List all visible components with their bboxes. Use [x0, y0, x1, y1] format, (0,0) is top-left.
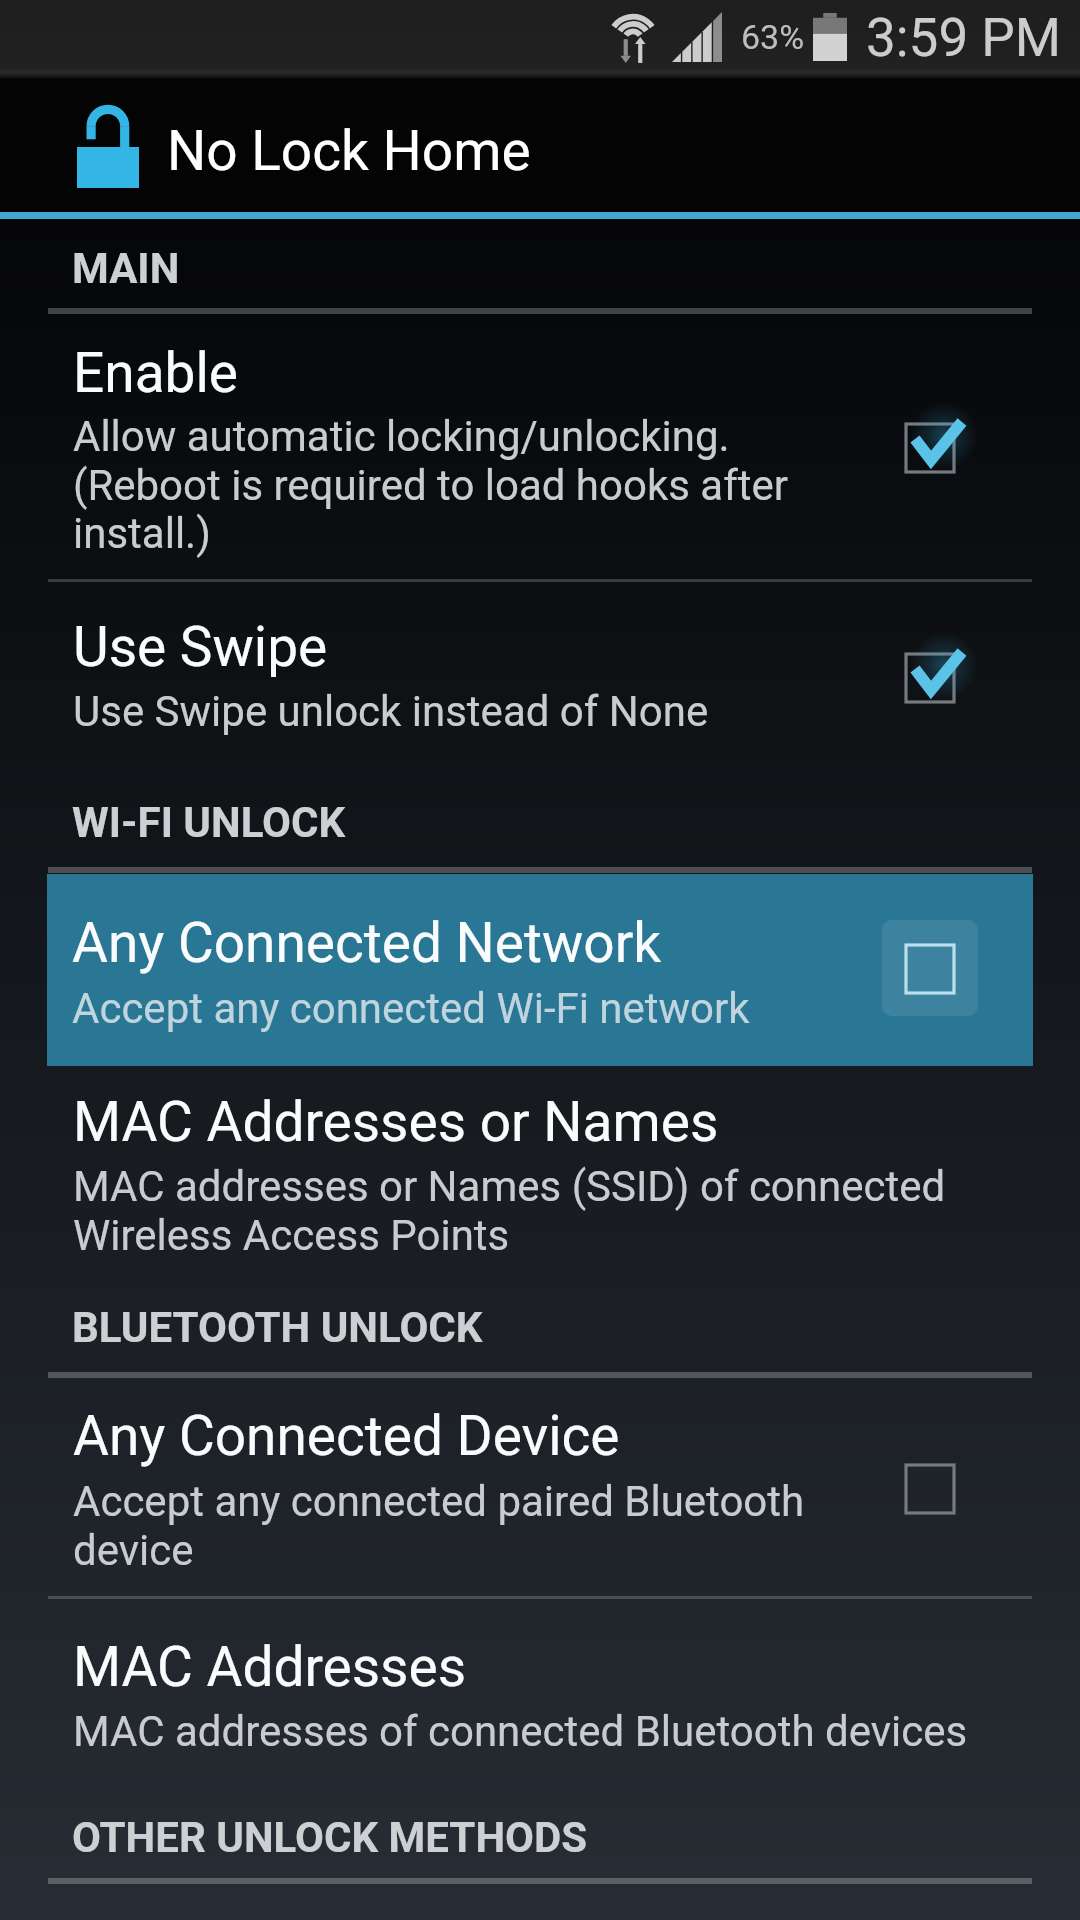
staticText: Accept any connected paired Bluetooth	[73, 1477, 805, 1526]
button[interactable]: Any Connected Device, not checked	[895, 1454, 965, 1524]
staticText: Use Swipe unlock instead of None	[73, 687, 709, 736]
button[interactable]: Any Connected Device	[0, 1394, 1080, 1596]
staticText: Wireless Access Points	[73, 1211, 510, 1260]
staticText: No Lock Home	[167, 119, 531, 183]
staticText: Use Swipe	[73, 615, 328, 679]
staticText: MAIN	[72, 244, 180, 293]
button[interactable]: Enable, checked	[895, 413, 965, 483]
button[interactable]: Any Connected Network, not checked	[895, 934, 965, 1004]
staticText: Accept any connected Wi-Fi network	[72, 984, 750, 1033]
button[interactable]: Use Swipe, checked	[895, 643, 965, 713]
staticText: device	[73, 1526, 194, 1575]
staticText: 63%	[741, 17, 805, 57]
staticText: Allow automatic locking/unlocking.	[73, 412, 730, 461]
staticText: Enable	[73, 341, 238, 405]
staticText: Any Connected Network	[72, 911, 662, 975]
button[interactable]: Use Swipe	[0, 585, 1080, 770]
staticText: MAC Addresses or Names	[73, 1090, 719, 1154]
staticText: WI-FI UNLOCK	[72, 798, 346, 847]
button[interactable]: Enable	[0, 330, 1080, 579]
staticText: MAC addresses or Names (SSID) of connect…	[73, 1162, 946, 1211]
button[interactable]: Any Connected Network	[47, 874, 1033, 1066]
other: App icon	[76, 104, 140, 190]
staticText: MAC Addresses	[73, 1635, 467, 1699]
button[interactable]: MAC Addresses	[0, 1602, 1080, 1790]
staticText: Any Connected Device	[73, 1404, 620, 1468]
staticText: OTHER UNLOCK METHODS	[72, 1813, 588, 1862]
button[interactable]: App icon	[40, 78, 560, 212]
staticText: (Reboot is required to load hooks after	[73, 461, 788, 510]
button[interactable]: MAC Addresses or Names	[0, 1080, 1080, 1290]
staticText: install.)	[73, 509, 211, 558]
staticText: MAC addresses of connected Bluetooth dev…	[73, 1707, 968, 1756]
staticText: BLUETOOTH UNLOCK	[72, 1303, 483, 1352]
staticText: 3:59 PM	[866, 7, 1062, 69]
